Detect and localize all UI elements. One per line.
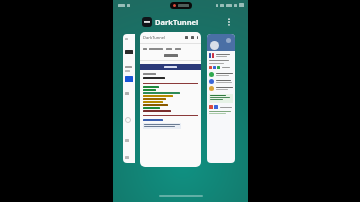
button[interactable]: [140, 64, 201, 70]
button[interactable]: Recent app: [207, 34, 235, 163]
button[interactable]: More options: [223, 16, 235, 28]
button[interactable]: DarkTunnel task: [140, 32, 201, 167]
staticText: DarkTunnel: [143, 35, 166, 40]
staticText: DarkTunnel: [155, 17, 199, 27]
button[interactable]: Recent app: [123, 34, 135, 163]
